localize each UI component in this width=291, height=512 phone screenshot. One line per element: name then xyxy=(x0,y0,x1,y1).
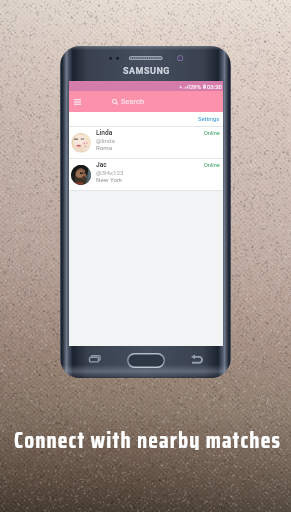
staticText: Connect with nearby matches xyxy=(2,422,291,450)
button[interactable]: Linda xyxy=(69,127,223,158)
staticText: New York xyxy=(96,176,123,183)
staticText: Roma xyxy=(96,144,113,151)
button[interactable]: Home xyxy=(127,353,165,368)
staticText: 29% xyxy=(190,83,202,90)
staticText: 03:20 xyxy=(207,83,222,90)
button[interactable]: Jac xyxy=(69,159,223,190)
staticText: Online xyxy=(204,162,220,169)
staticText: @linda xyxy=(96,137,115,144)
staticText: Linda xyxy=(96,129,113,137)
staticText: SAMSUNG xyxy=(123,66,170,77)
staticText: Search xyxy=(121,97,145,106)
staticText: @3l4x123 xyxy=(96,169,124,176)
button[interactable]: Settings xyxy=(195,114,223,125)
button[interactable]: Recent apps xyxy=(82,352,106,370)
staticText: Jac xyxy=(96,161,107,169)
button[interactable]: Back xyxy=(185,352,209,370)
button[interactable]: Menu xyxy=(69,91,86,112)
staticText: Settings xyxy=(198,116,220,123)
staticText: Online xyxy=(204,130,220,137)
